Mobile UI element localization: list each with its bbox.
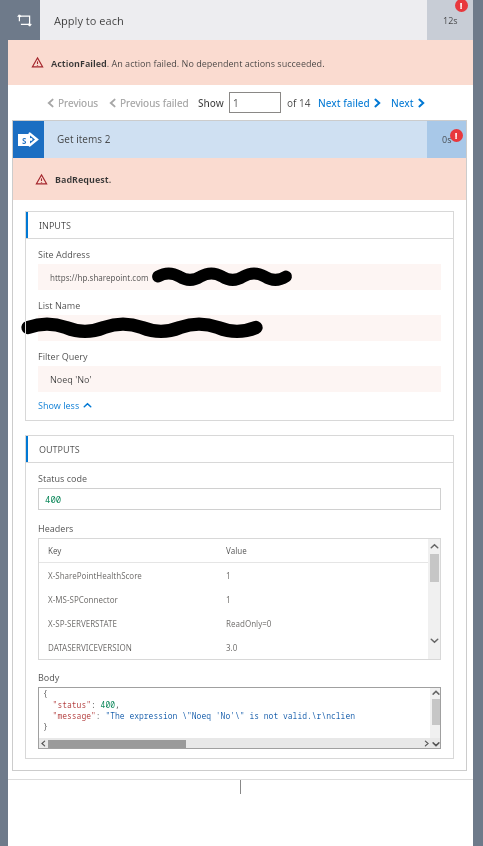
staticText: 1 [226,570,231,581]
staticText: Site Address [38,248,90,260]
button[interactable]: 1 [229,92,281,113]
staticText: BadRequest. [55,173,112,185]
staticText: Show less [38,399,80,411]
button[interactable]: Show less [38,399,92,411]
staticText: } [43,721,48,732]
staticText: Previous [58,96,99,110]
staticText: 12s [443,14,458,26]
staticText: 400 [45,493,62,505]
button[interactable]: Previous [46,96,99,110]
staticText: of 14 [287,96,311,110]
staticText: Key [48,545,226,556]
staticText: OUTPUTS [39,443,80,455]
staticText: ! [455,130,458,141]
staticText: "message": "The expression \"Noeq 'No'\"… [43,710,355,721]
button[interactable]: Next [391,96,426,110]
staticText: Status code [38,472,88,484]
button[interactable]: Apply to each loop [8,0,473,40]
staticText: Value [226,545,247,556]
staticText: https://hp.sharepoint.com [50,272,149,283]
button[interactable]: S [12,120,467,158]
staticText: Next failed [318,96,370,110]
staticText: S [22,135,27,146]
other: Apply to each loop [8,0,40,40]
staticText: Noeq 'No' [50,373,92,385]
staticText: X-SharePointHealthScore [48,570,226,581]
button[interactable]: Next failed [318,96,382,110]
staticText: Headers [38,522,74,534]
staticText: ! [460,0,463,11]
staticText: 3.0 [226,642,238,653]
staticText: X-SP-SERVERSTATE [48,618,226,629]
staticText: X-MS-SPConnector [48,594,226,605]
staticText: Show [198,96,224,110]
staticText: Apply to each [54,13,124,28]
staticText: Previous failed [120,96,189,110]
staticText: { [43,688,48,699]
button[interactable]: Previous failed [108,96,189,110]
staticText: Next [391,96,414,110]
staticText: "status": 400, [43,699,120,710]
staticText: List Name [38,299,81,311]
staticText: Body [38,671,60,683]
staticText: 1 [226,594,231,605]
staticText: 0s [442,133,452,145]
staticText: INPUTS [39,219,71,231]
staticText: 1 [233,96,239,110]
staticText: DATASERVICEVERSION [48,642,226,653]
staticText: ActionFailed. An action failed. No depen… [51,57,325,69]
staticText: Get items 2 [57,132,111,146]
staticText: Filter Query [38,350,88,362]
staticText: ReadOnly=0 [226,618,272,629]
